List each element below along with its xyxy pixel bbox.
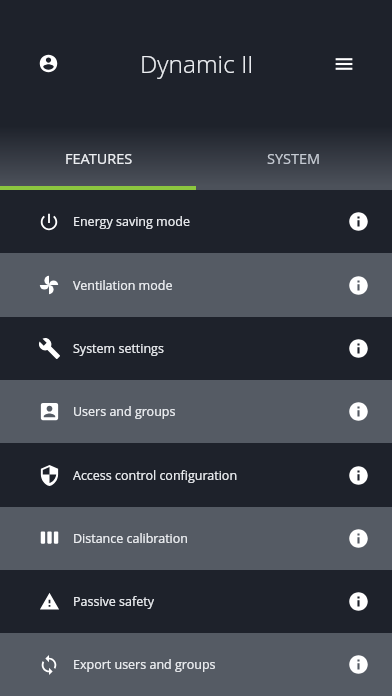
staticText: Energy saving mode — [73, 213, 323, 230]
staticText: Dynamic II — [140, 47, 254, 80]
button[interactable]: Users and groups — [0, 380, 392, 443]
staticText: Passive safety — [73, 593, 323, 610]
button[interactable]: Info — [322, 570, 392, 633]
staticText: Distance calibration — [73, 530, 323, 547]
staticText: System settings — [73, 340, 323, 357]
button[interactable]: Menu — [321, 41, 366, 86]
button[interactable]: Info — [322, 380, 392, 443]
button[interactable]: Account — [26, 41, 71, 86]
button[interactable]: Info — [322, 190, 392, 253]
button[interactable]: System settings — [0, 317, 392, 380]
button[interactable]: Info — [322, 443, 392, 507]
staticText: Access control configuration — [73, 467, 323, 484]
button[interactable]: Ventilation mode — [0, 253, 392, 317]
button[interactable]: Info — [322, 633, 392, 696]
button[interactable]: Info — [322, 507, 392, 570]
button[interactable]: Energy saving mode — [0, 190, 392, 253]
button[interactable]: Access control configuration — [0, 443, 392, 507]
staticText: Users and groups — [73, 403, 323, 420]
button[interactable]: Info — [322, 253, 392, 317]
button[interactable]: SYSTEM — [196, 126, 392, 190]
button[interactable]: Distance calibration — [0, 507, 392, 570]
staticText: Export users and groups — [73, 656, 323, 673]
button[interactable]: FEATURES — [0, 126, 196, 190]
staticText: SYSTEM — [267, 149, 321, 169]
button[interactable]: Export users and groups — [0, 633, 392, 696]
staticText: Ventilation mode — [73, 277, 323, 294]
button[interactable]: Passive safety — [0, 570, 392, 633]
staticText: FEATURES — [65, 149, 133, 169]
button[interactable]: Info — [322, 317, 392, 380]
